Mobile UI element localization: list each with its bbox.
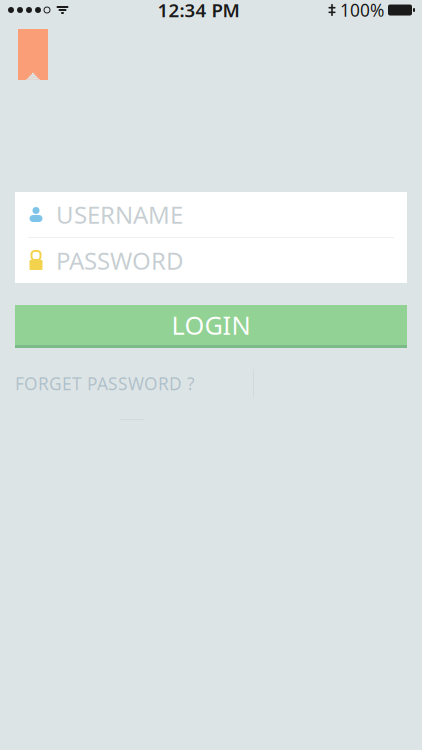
staticText: LOGIN [171,308,250,342]
staticText: 12:34 PM [157,0,239,22]
button[interactable]: LOGIN [15,305,407,348]
staticText: 100% [340,0,384,21]
staticText: USERNAME [56,199,183,230]
button[interactable]: FORGET PASSWORD ? [15,366,207,401]
staticText: PASSWORD [56,245,184,276]
staticText: FORGET PASSWORD ? [15,372,195,395]
